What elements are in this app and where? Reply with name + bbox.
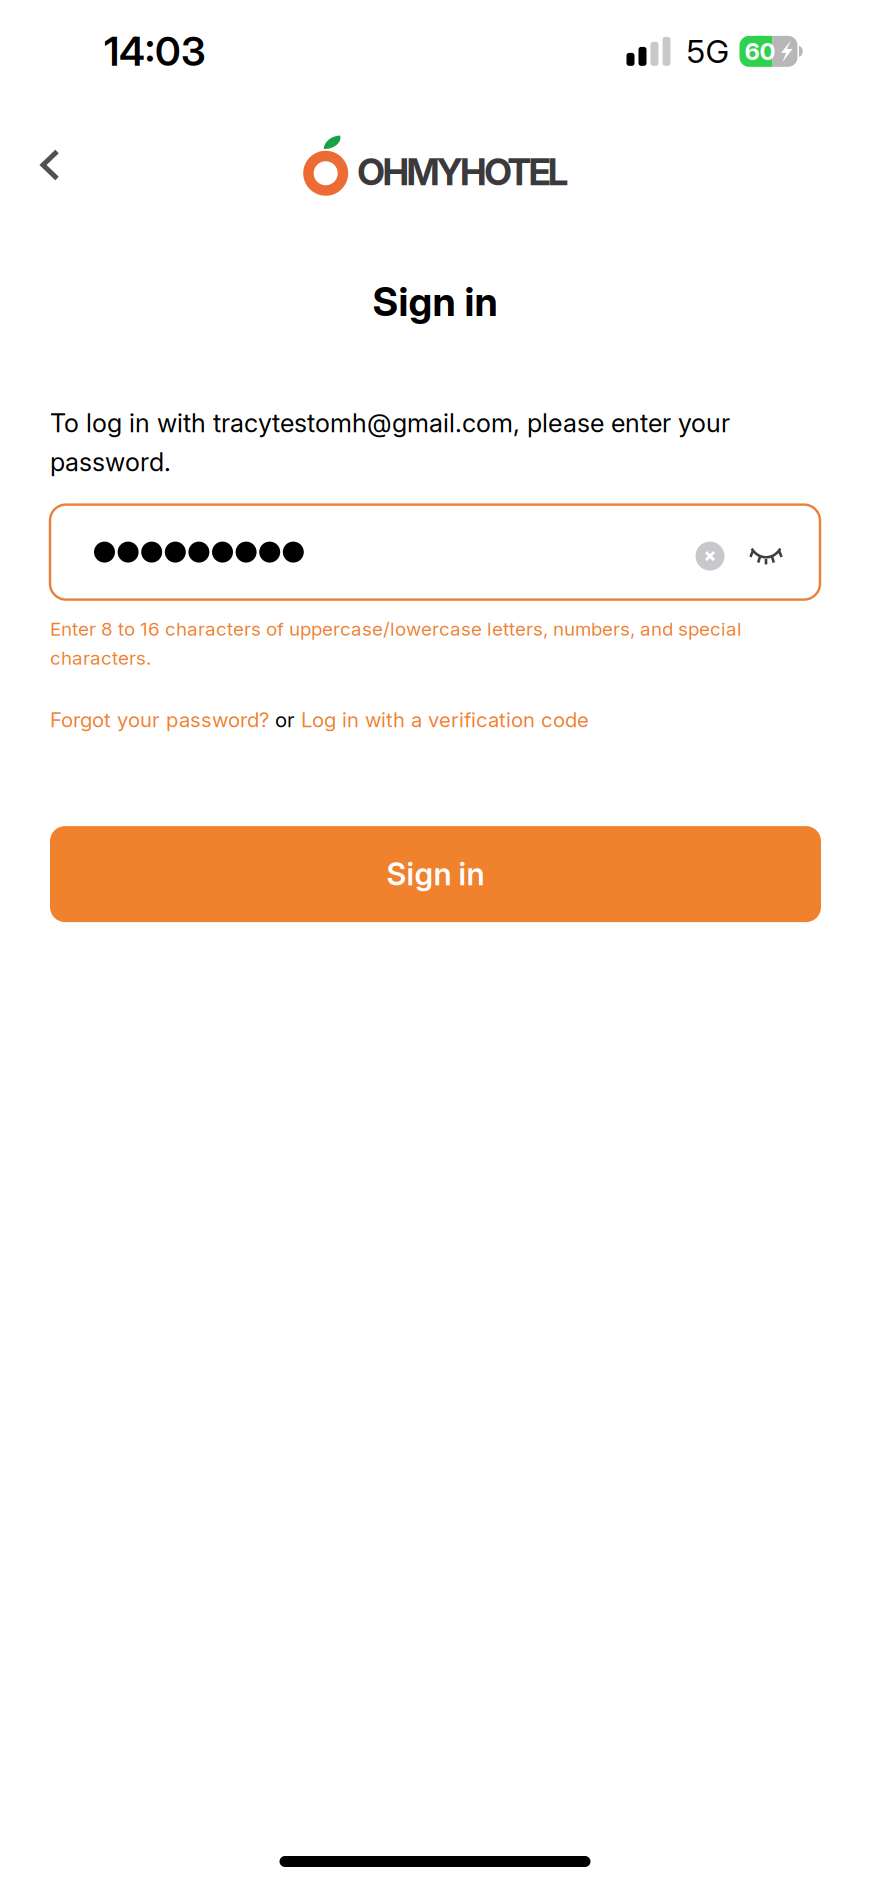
staticText: 60 <box>744 37 775 66</box>
staticText: To log in with tracytestomh@gmail.com, p… <box>50 408 730 438</box>
staticText: 14:03 <box>104 27 206 75</box>
staticText: password. <box>50 447 171 477</box>
staticText: Sign in <box>386 856 484 893</box>
button[interactable]: Forgot your password? <box>50 708 269 732</box>
button[interactable]: Show password <box>738 522 794 582</box>
staticText: Forgot your password? <box>50 708 269 732</box>
staticText: OHMYHOTEL <box>357 150 569 194</box>
button[interactable]: Back <box>18 133 82 197</box>
staticText: 5G <box>686 32 729 71</box>
button[interactable]: Sign in <box>50 826 821 922</box>
staticText: or <box>269 708 301 732</box>
button[interactable]: Log in with a verification code <box>301 708 589 732</box>
staticText: Sign in <box>372 278 497 326</box>
staticText: characters. <box>50 647 151 669</box>
staticText: Log in with a verification code <box>301 708 589 732</box>
staticText: Enter 8 to 16 characters of uppercase/lo… <box>50 618 742 640</box>
button[interactable]: Clear text <box>682 522 738 582</box>
